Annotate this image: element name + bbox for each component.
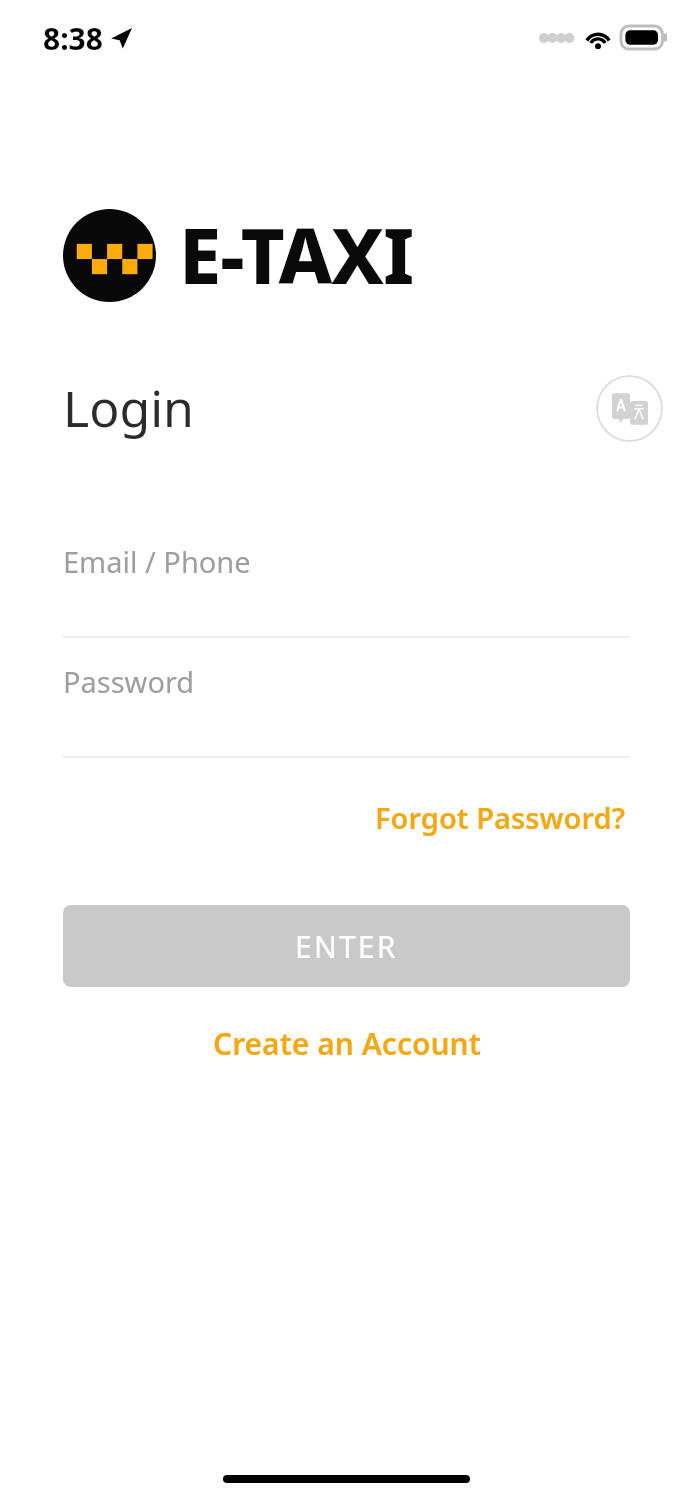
staticText: Login: [63, 374, 194, 442]
button[interactable]: Forgot Password?: [371, 790, 630, 845]
button[interactable]: Change language: [596, 375, 663, 442]
staticText: 8:38: [43, 18, 103, 59]
button[interactable]: ENTER: [63, 905, 630, 987]
staticText: Email / Phone: [63, 542, 251, 581]
staticText: Create an Account: [213, 1023, 481, 1064]
staticText: Password: [63, 662, 195, 701]
staticText: Forgot Password?: [375, 798, 626, 837]
button[interactable]: Create an Account: [203, 1015, 491, 1072]
staticText: E-TAXI: [179, 203, 414, 307]
staticText: ENTER: [295, 926, 398, 967]
